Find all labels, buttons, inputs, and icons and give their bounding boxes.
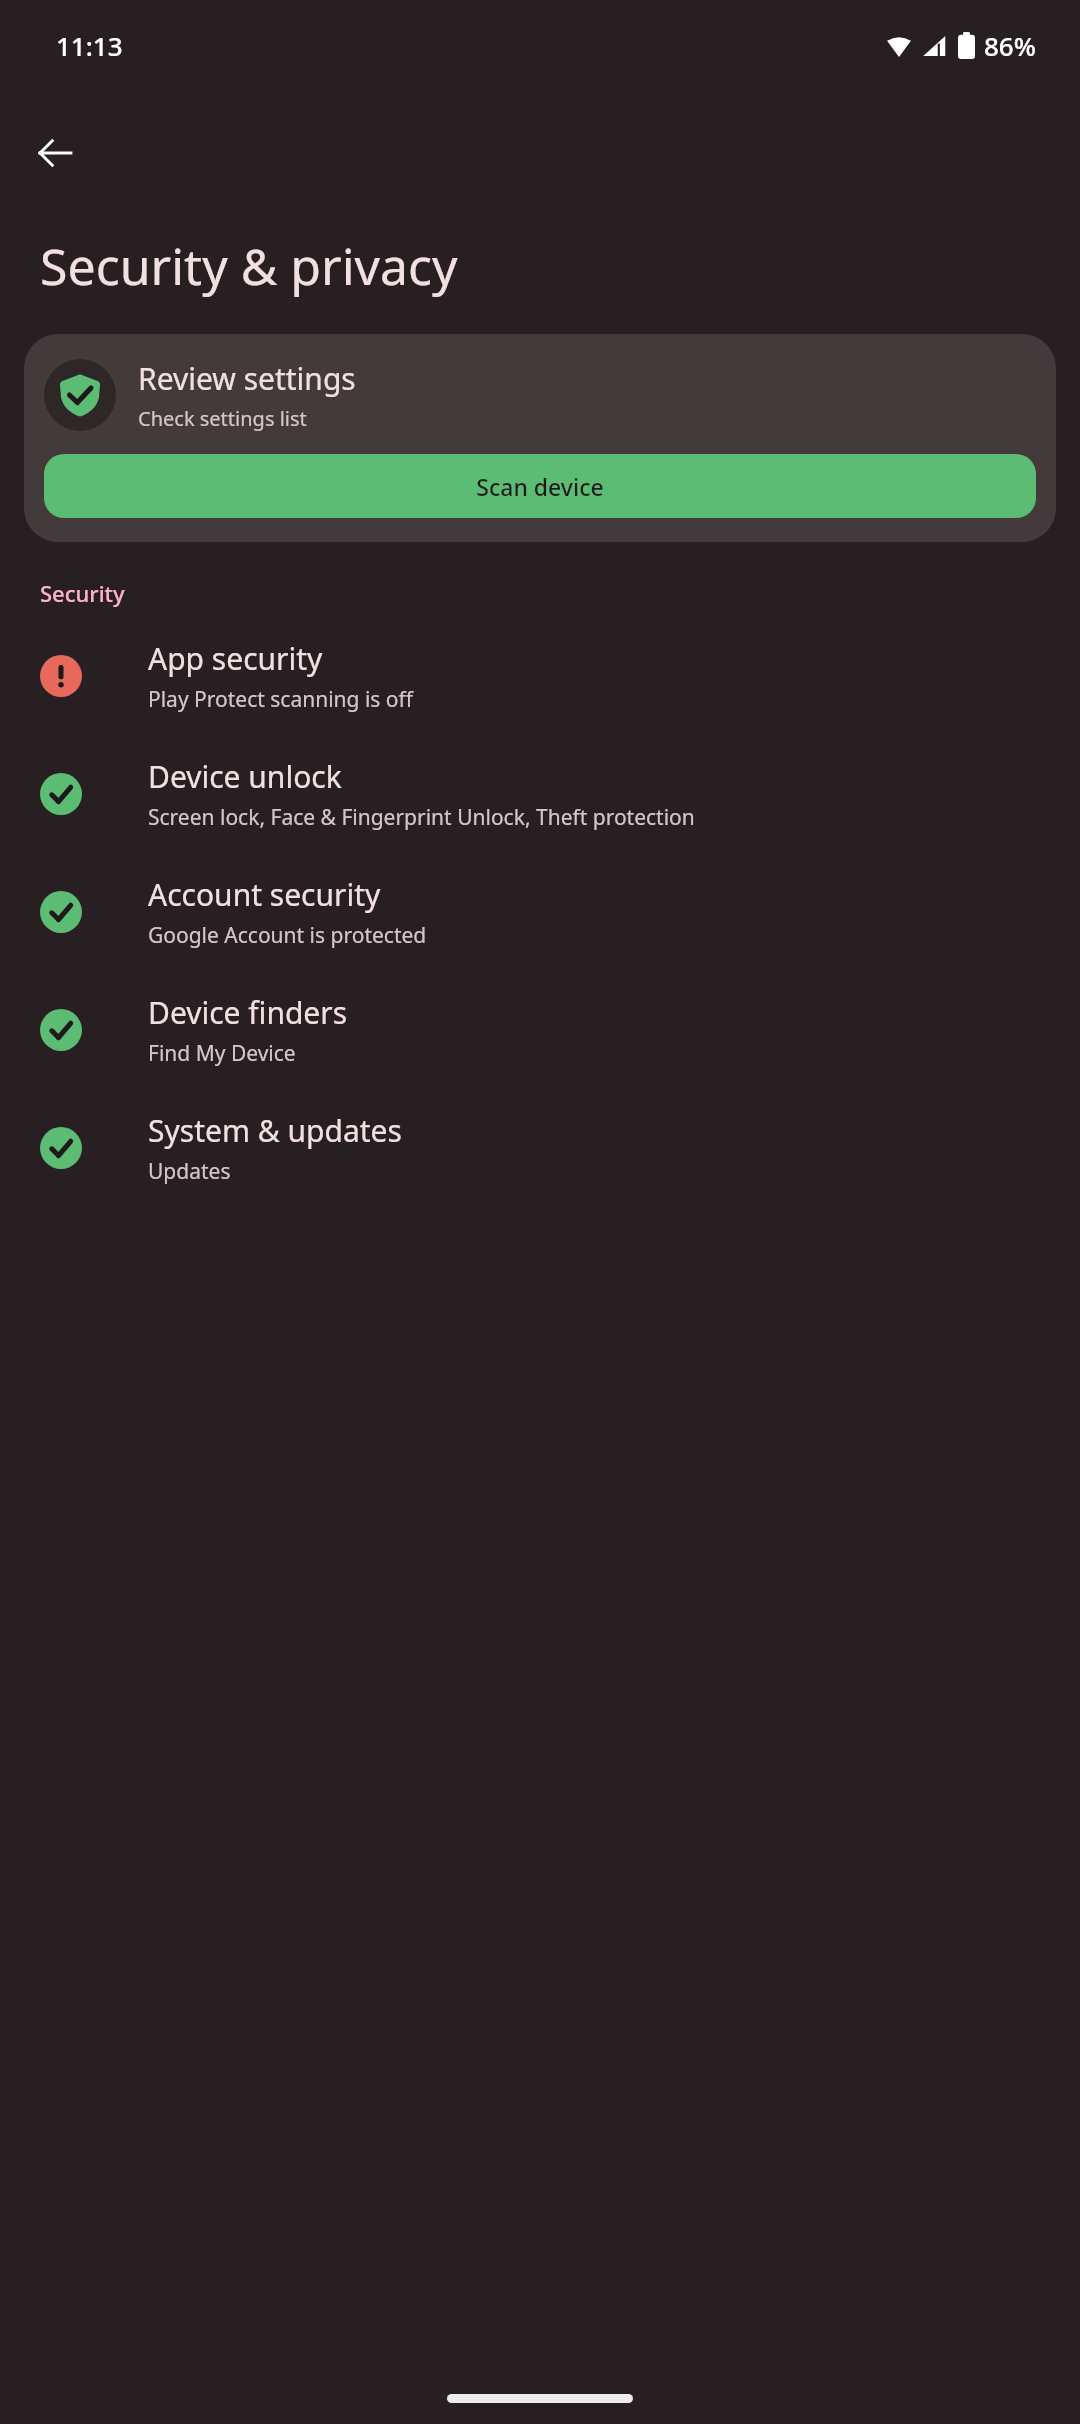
button[interactable]: System & updates [0, 1102, 1080, 1194]
staticText: Updates [148, 1157, 231, 1186]
staticText: App security [148, 638, 323, 679]
staticText: Device finders [148, 992, 348, 1033]
staticText: Play Protect scanning is off [148, 685, 414, 714]
staticText: Account security [148, 874, 381, 915]
staticText: Find My Device [148, 1039, 296, 1068]
button[interactable]: Device finders [0, 984, 1080, 1076]
button[interactable]: App security [0, 630, 1080, 722]
staticText: Security [40, 578, 125, 608]
button[interactable]: Scan device [44, 454, 1036, 518]
staticText: Scan device [476, 471, 604, 502]
button[interactable]: Review settings [24, 334, 1056, 542]
staticText: System & updates [148, 1110, 402, 1151]
staticText: Check settings list [138, 405, 307, 432]
staticText: Device unlock [148, 756, 342, 797]
staticText: 86% [984, 28, 1036, 63]
staticText: 11:13 [56, 28, 123, 63]
staticText: Review settings [138, 358, 356, 399]
button[interactable]: Device unlock [0, 748, 1080, 840]
staticText: Security & privacy [40, 232, 458, 300]
staticText: Google Account is protected [148, 921, 427, 950]
button[interactable]: Back [22, 120, 88, 186]
button[interactable]: Account security [0, 866, 1080, 958]
staticText: Screen lock, Face & Fingerprint Unlock, … [148, 803, 695, 832]
